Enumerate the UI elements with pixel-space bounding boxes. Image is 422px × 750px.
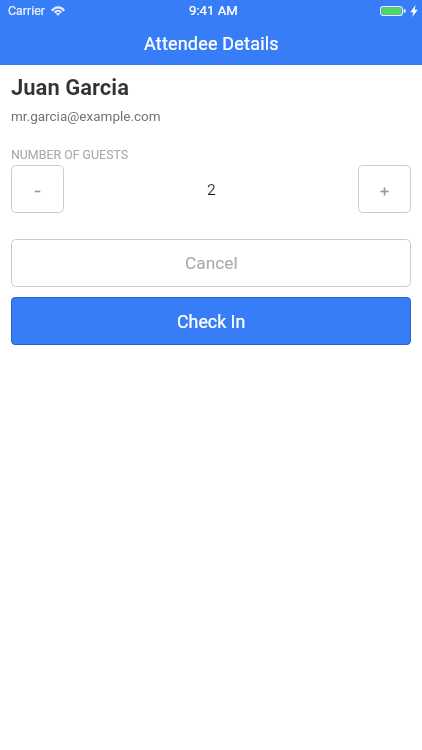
staticText: 9:41 AM (189, 3, 238, 18)
button[interactable]: Cancel (11, 239, 411, 287)
button[interactable]: Decrease number of guests (11, 165, 64, 213)
staticText: Juan Garcia (11, 75, 129, 101)
staticText: Cancel (185, 253, 238, 273)
staticText: Attendee Details (144, 33, 279, 54)
staticText: Check In (177, 311, 246, 332)
staticText: NUMBER OF GUESTS (11, 147, 129, 162)
button[interactable]: Check In (11, 297, 411, 345)
button[interactable]: Increase number of guests (358, 165, 411, 213)
staticText: mr.garcia@example.com (11, 108, 161, 124)
staticText: 2 (207, 181, 216, 199)
staticText: Carrier (8, 3, 45, 18)
